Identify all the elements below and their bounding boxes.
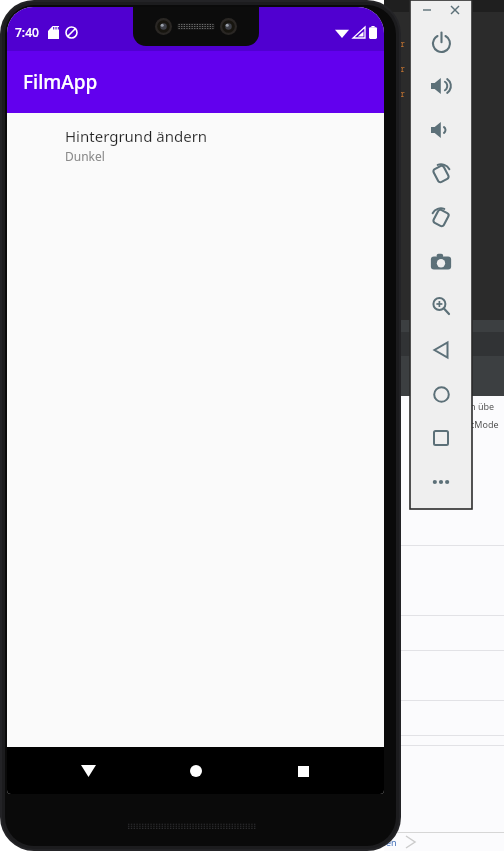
button[interactable]: Volume up: [410, 64, 472, 108]
button[interactable]: Back: [62, 749, 114, 793]
button[interactable]: Take screenshot: [410, 240, 472, 284]
staticText: en: [386, 836, 397, 848]
staticText: FilmApp: [23, 69, 98, 95]
other: SD card: [48, 26, 59, 39]
button[interactable]: Zoom: [410, 284, 472, 328]
button[interactable]: Power: [410, 20, 472, 64]
button[interactable]: Home: [170, 749, 222, 793]
staticText: 7:40: [15, 24, 39, 40]
button[interactable]: Hintergrund ändern: [7, 113, 384, 177]
other: Do not disturb off: [65, 26, 78, 39]
button[interactable]: Overview: [410, 416, 472, 460]
button[interactable]: Home: [410, 372, 472, 416]
staticText: r: [400, 113, 405, 124]
button[interactable]: Volume down: [410, 108, 472, 152]
other: Battery: [369, 26, 377, 39]
staticText: cMode: [470, 418, 499, 430]
button[interactable]: Minimize: [418, 1, 436, 19]
button[interactable]: Rotate left: [410, 152, 472, 196]
staticText: Dunkel: [65, 148, 105, 164]
staticText: Hintergrund ändern: [65, 126, 208, 146]
button[interactable]: Close: [446, 1, 464, 19]
staticText: r: [400, 63, 405, 74]
button[interactable]: Back: [410, 328, 472, 372]
other: Mobile signal: [353, 27, 365, 38]
staticText: r: [400, 88, 405, 99]
staticText: r: [400, 138, 405, 149]
staticText: n übe: [470, 400, 495, 412]
button[interactable]: Recent apps: [277, 749, 329, 793]
button[interactable]: More: [410, 460, 472, 504]
other: Wi-Fi: [335, 27, 349, 38]
button[interactable]: Rotate right: [410, 196, 472, 240]
staticText: r: [400, 38, 405, 49]
